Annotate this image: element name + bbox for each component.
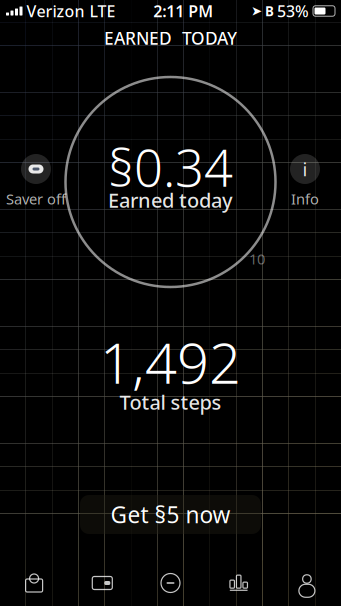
staticText: EARNED TODAY [104,26,237,49]
button[interactable]: Get §5 now [80,495,261,534]
staticText: Total steps [119,389,221,415]
button[interactable]: Saver off [0,154,72,208]
button[interactable]: Info [269,154,341,208]
staticText: Verizon [26,0,84,22]
button[interactable]: Wallet [68,560,136,606]
button[interactable]: Shop [0,560,68,606]
button[interactable]: Profile [273,560,341,606]
staticText: i [302,157,307,181]
staticText: §0.34 [108,133,233,201]
staticText: ➤ [251,3,262,18]
staticText: LTE [89,0,115,22]
staticText: Saver off [6,189,66,208]
staticText: Earned today [108,187,233,213]
staticText: B [265,2,274,20]
staticText: Info [291,189,319,208]
staticText: 1,492 [100,325,241,399]
staticText: 10 [249,249,265,268]
staticText: Get §5 now [110,499,230,529]
staticText: 2:11 PM [153,0,213,22]
button[interactable]: Stats [205,560,273,606]
button[interactable]: Activity [136,560,205,606]
staticText: 53% [277,0,309,22]
